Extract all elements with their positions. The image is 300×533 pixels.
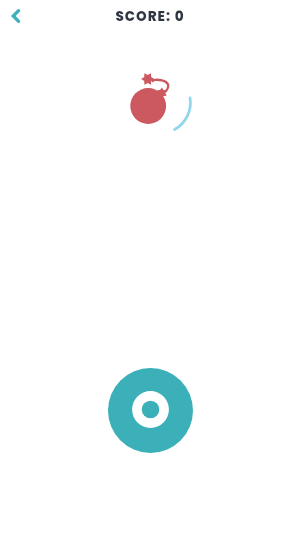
button[interactable]: Back [0,0,32,32]
staticText: SCORE: 0 [115,7,185,26]
button[interactable]: Drop bomb [108,368,193,453]
